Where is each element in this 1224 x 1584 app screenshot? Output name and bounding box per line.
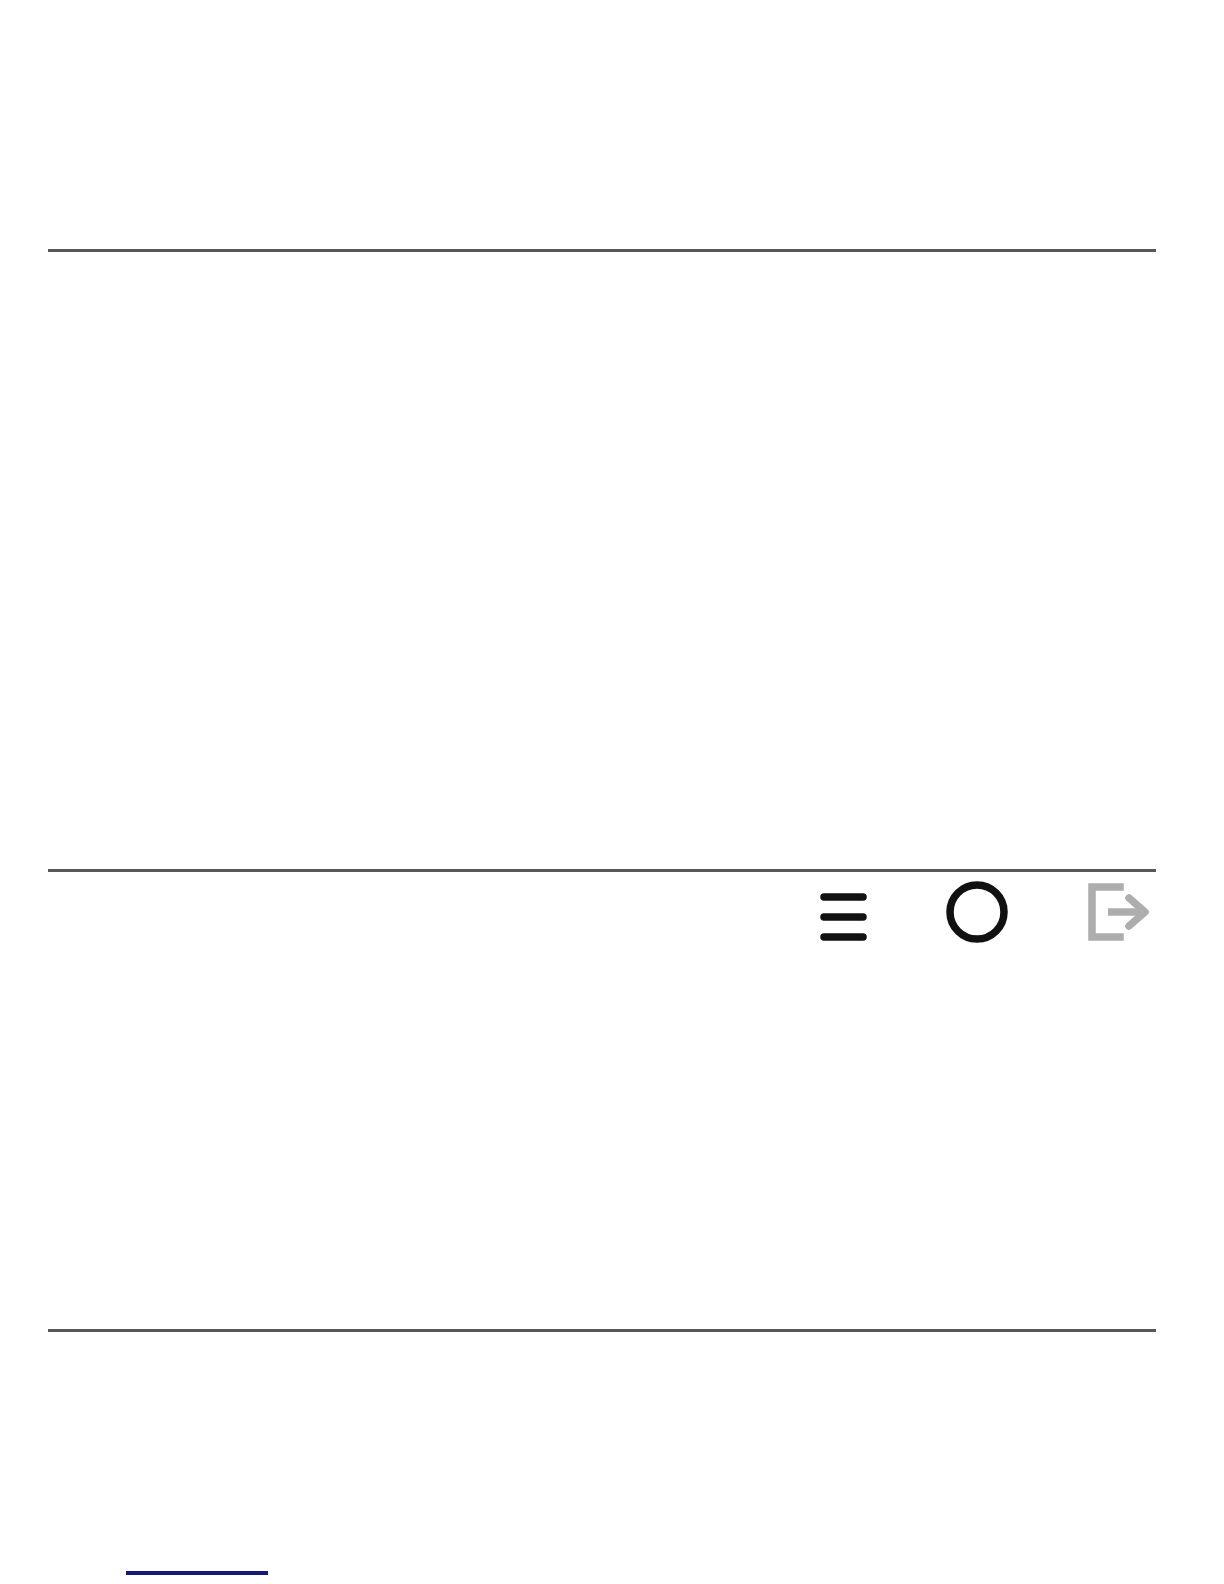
button[interactable]: Record <box>944 879 1010 945</box>
button[interactable]: Link <box>126 1540 268 1584</box>
button[interactable]: Sign out <box>1086 882 1148 942</box>
button[interactable]: Menu <box>812 884 876 940</box>
